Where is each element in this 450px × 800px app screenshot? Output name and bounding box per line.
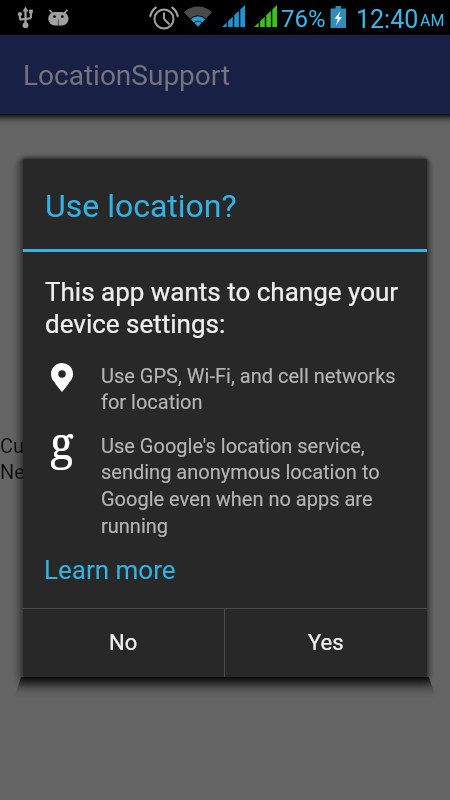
button[interactable]: No — [23, 609, 224, 677]
staticText: g — [50, 412, 74, 472]
staticText: Use GPS, Wi-Fi, and cell networks for lo… — [101, 364, 396, 414]
button[interactable]: Learn more — [44, 555, 176, 585]
staticText: This app wants to change your device set… — [45, 277, 399, 339]
staticText: Yes — [308, 630, 344, 656]
staticText: LocationSupport — [23, 59, 231, 92]
staticText: Learn more — [44, 555, 176, 585]
staticText: AM — [420, 11, 445, 30]
staticText: 76% — [281, 5, 326, 33]
button[interactable]: Yes — [225, 609, 427, 677]
staticText: 12:40 — [356, 5, 419, 34]
staticText: Current Location: Network provider — [0, 434, 153, 484]
staticText: Use location? — [45, 187, 237, 225]
staticText: Use Google's location service, sending a… — [101, 434, 380, 538]
staticText: No — [109, 630, 138, 656]
